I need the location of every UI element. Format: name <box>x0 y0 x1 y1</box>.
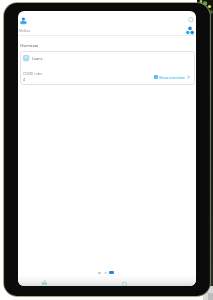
button[interactable] <box>181 26 196 37</box>
button[interactable] <box>120 281 129 286</box>
staticText: Overview <box>20 43 38 48</box>
button[interactable] <box>40 280 50 286</box>
button[interactable] <box>183 15 196 24</box>
button[interactable]: Melissa <box>19 16 49 34</box>
button[interactable]: Show overview <box>154 73 193 81</box>
staticText: 4 <box>23 77 26 82</box>
staticText: Loans <box>32 56 43 61</box>
staticText: Show overview <box>159 75 185 80</box>
button[interactable] <box>98 270 118 275</box>
staticText: COVID rules <box>23 71 43 76</box>
staticText: Melissa <box>19 29 31 33</box>
button[interactable]: Loans <box>20 51 195 85</box>
